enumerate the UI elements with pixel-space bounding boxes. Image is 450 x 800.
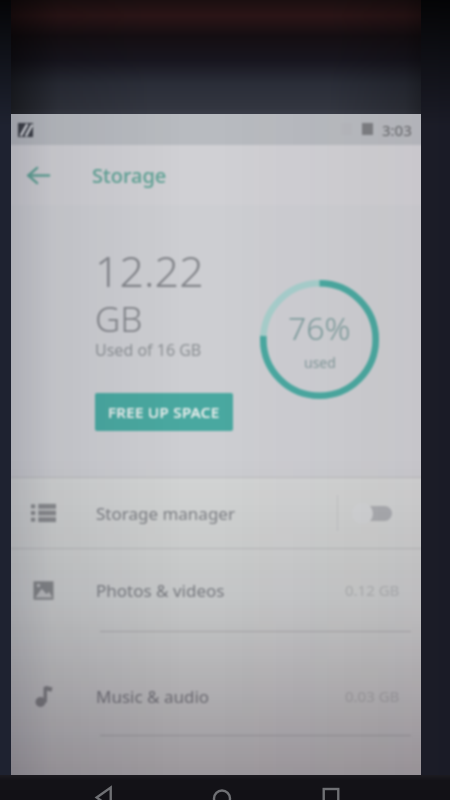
- staticText: 12.22: [95, 241, 204, 300]
- staticText: 76%: [288, 306, 351, 350]
- staticText: Music & audio: [96, 685, 210, 708]
- staticText: 0.12 GB: [345, 580, 400, 600]
- button[interactable]: Back: [17, 154, 59, 196]
- staticText: GB: [95, 295, 143, 343]
- staticText: Used of 16 GB: [95, 339, 202, 361]
- button[interactable]: Back: [92, 782, 118, 800]
- staticText: Storage manager: [96, 502, 235, 525]
- staticText: 3:03: [382, 120, 412, 140]
- staticText: Photos & videos: [96, 579, 225, 602]
- staticText: Storage: [92, 162, 167, 189]
- button[interactable]: Music & audio: [11, 632, 421, 736]
- button[interactable]: Storage manager toggle: [352, 498, 400, 528]
- button[interactable]: Home: [209, 782, 235, 800]
- button[interactable]: Storage manager: [11, 478, 421, 548]
- button[interactable]: Photos & videos: [11, 549, 421, 632]
- staticText: used: [304, 353, 336, 372]
- button[interactable]: Recents: [318, 782, 344, 800]
- button[interactable]: FREE UP SPACE: [95, 393, 233, 431]
- staticText: FREE UP SPACE: [108, 402, 220, 422]
- staticText: 0.03 GB: [345, 686, 400, 706]
